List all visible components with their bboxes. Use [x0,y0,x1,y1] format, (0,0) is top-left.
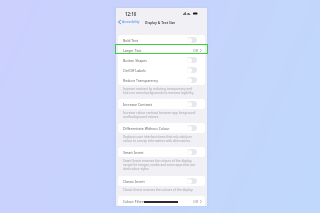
staticText: Reduce Transparency [123,78,159,83]
button[interactable]: Back [118,20,140,24]
staticText: Improve contrast by reducing transparenc… [123,87,200,95]
button[interactable]: Increase Contrast [118,99,205,109]
button[interactable]: Smart Invert [118,147,205,157]
button[interactable]: Colour Filters [118,196,205,206]
staticText: 12:10 [125,11,137,17]
staticText: Off [193,199,199,204]
button[interactable]: Reduce Transparency [118,75,205,85]
button[interactable]: Differentiate Without Colour [118,123,205,133]
staticText: Classic Invert [123,179,145,184]
staticText: Increase colour contrast between app for… [123,111,200,119]
staticText: Replaces user interface items that rely … [123,135,200,143]
staticText: Smart Invert reverses the colours of the… [123,159,200,171]
staticText: Colour Filters [123,199,145,204]
staticText: Larger Text [123,48,142,53]
staticText: Smart Invert [123,150,144,155]
button[interactable]: Bold Text [118,35,205,45]
staticText: Accessibility [122,20,140,24]
button[interactable]: Classic Invert [118,176,205,186]
staticText: Display & Text Size [145,20,176,24]
other: Back [118,20,121,24]
staticText: Differentiate Without Colour [123,126,170,131]
staticText: Off [193,48,199,53]
staticText: Increase Contrast [123,102,152,107]
staticText: Classic Invert reverses the colours of t… [123,188,194,192]
button[interactable]: Larger Text [118,45,205,55]
button[interactable]: On/Off Labels [118,65,205,75]
button[interactable]: Button Shapes [118,55,205,65]
staticText: On/Off Labels [123,68,146,73]
staticText: Button Shapes [123,58,148,63]
staticText: Bold Text [123,38,139,43]
